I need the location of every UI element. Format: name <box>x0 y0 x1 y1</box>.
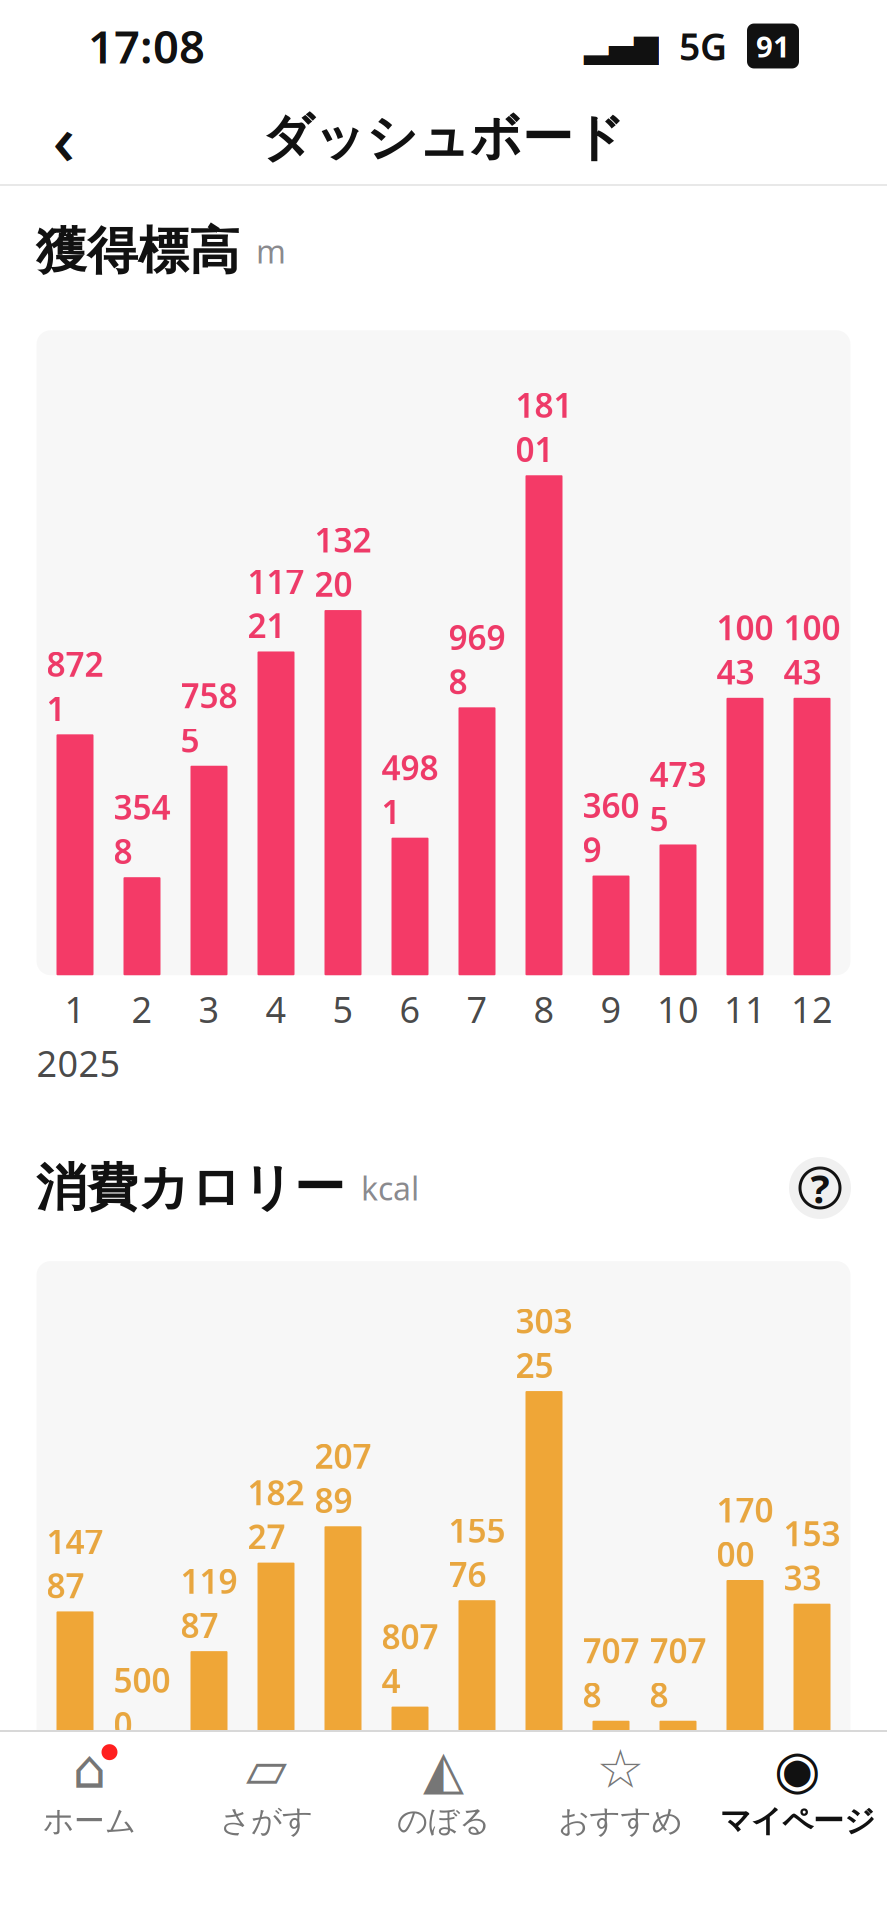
staticText: 10 <box>657 985 699 1033</box>
staticText: 10043 <box>783 605 840 694</box>
staticText: 17:08 <box>88 16 205 76</box>
staticText: kcal <box>345 1167 419 1209</box>
staticText: 11 <box>724 985 766 1033</box>
staticText: 11721 <box>247 559 304 647</box>
button[interactable]: ▱ <box>178 1737 355 1847</box>
staticText: さがす <box>220 1802 313 1840</box>
staticText: ? <box>810 1161 829 1214</box>
staticText: 1 <box>64 985 85 1033</box>
staticText: ダッシュボード <box>262 107 625 169</box>
button[interactable]: Help <box>789 1157 851 1219</box>
staticText: ◉ <box>774 1739 821 1799</box>
staticText: おすすめ <box>558 1802 682 1840</box>
staticText: 11987 <box>180 1559 237 1647</box>
staticText: 3 <box>198 985 219 1033</box>
staticText: 20789 <box>314 1434 371 1522</box>
staticText: 消費カロリー <box>36 1157 345 1219</box>
staticText: 7078 <box>649 1628 706 1717</box>
staticText: 13220 <box>314 517 371 606</box>
staticText: 15333 <box>783 1511 840 1600</box>
staticText: 獲得標高 <box>36 220 240 282</box>
staticText: 10043 <box>716 605 773 694</box>
staticText: 5 <box>332 985 353 1033</box>
staticText: ☆ <box>596 1739 644 1799</box>
staticText: 18227 <box>247 1470 304 1559</box>
staticText: 5G <box>659 21 747 71</box>
staticText: 17000 <box>716 1487 773 1576</box>
staticText: 8 <box>533 985 554 1033</box>
staticText: 3609 <box>582 783 639 871</box>
staticText: 15576 <box>448 1508 505 1596</box>
staticText: 9 <box>600 985 621 1033</box>
staticText: 7078 <box>582 1628 639 1717</box>
staticText: ホーム <box>43 1802 136 1840</box>
staticText: 3548 <box>113 785 170 873</box>
staticText: 12 <box>791 985 833 1033</box>
staticText: ▂▄▆ <box>584 28 659 64</box>
staticText: 2025 <box>36 1039 120 1087</box>
staticText: ‹ <box>52 92 75 184</box>
staticText: 4 <box>265 985 286 1033</box>
staticText: 30325 <box>515 1299 572 1387</box>
staticText: 9698 <box>448 615 505 703</box>
staticText: 8074 <box>381 1614 438 1703</box>
button[interactable]: ◉ <box>709 1737 886 1847</box>
staticText: 8721 <box>46 642 103 730</box>
staticText: 18101 <box>515 383 572 471</box>
staticText: m <box>240 230 286 272</box>
staticText: 5000 <box>113 1658 170 1746</box>
staticText: 14787 <box>46 1519 103 1607</box>
staticText: のぼる <box>397 1802 490 1840</box>
staticText: 4981 <box>381 745 438 834</box>
staticText: ⌂ <box>72 1739 106 1799</box>
staticText: 6 <box>399 985 420 1033</box>
staticText: 7 <box>466 985 487 1033</box>
button[interactable]: ⌂ <box>1 1737 178 1847</box>
staticText: 2 <box>131 985 152 1033</box>
staticText: マイページ <box>720 1802 875 1840</box>
button[interactable]: ☆ <box>532 1737 709 1847</box>
staticText: 4735 <box>649 752 706 840</box>
staticText: 91 <box>756 26 790 65</box>
staticText: 7585 <box>180 673 237 762</box>
staticText: ▱ <box>246 1739 287 1799</box>
button[interactable]: ◭ <box>355 1737 532 1847</box>
staticText: ◭ <box>423 1739 464 1799</box>
button[interactable]: Back <box>24 98 104 178</box>
